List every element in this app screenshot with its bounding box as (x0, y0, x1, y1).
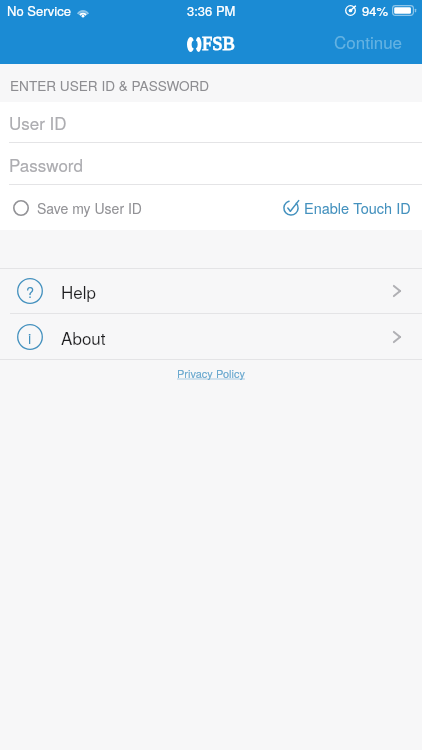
button[interactable]: Save my User ID (0, 190, 148, 226)
staticText: Save my User ID (37, 198, 142, 218)
staticText: Help (61, 279, 96, 303)
staticText: Privacy Policy (177, 365, 245, 381)
staticText: Password (9, 152, 83, 176)
button[interactable]: Password (0, 143, 422, 184)
other: Open (393, 285, 401, 297)
staticText: Enable Touch ID (304, 197, 411, 218)
staticText: No Service (7, 1, 71, 20)
button[interactable]: ? (0, 269, 422, 313)
staticText: FSB (202, 34, 235, 54)
staticText: Continue (334, 29, 403, 53)
button[interactable]: Continue (316, 21, 422, 64)
other: Open (393, 331, 401, 343)
button[interactable]: Enable Touch ID (277, 189, 422, 226)
staticText: About (61, 325, 106, 349)
staticText: i (28, 327, 32, 348)
staticText: User ID (9, 110, 67, 134)
button[interactable]: i (0, 314, 422, 359)
staticText: ENTER USER ID & PASSWORD (10, 75, 210, 94)
staticText: 94% (362, 1, 389, 20)
staticText: ? (26, 281, 35, 302)
staticText: 3:36 PM (187, 1, 236, 20)
button[interactable]: User ID (0, 102, 422, 142)
button[interactable]: Privacy Policy (169, 360, 253, 388)
